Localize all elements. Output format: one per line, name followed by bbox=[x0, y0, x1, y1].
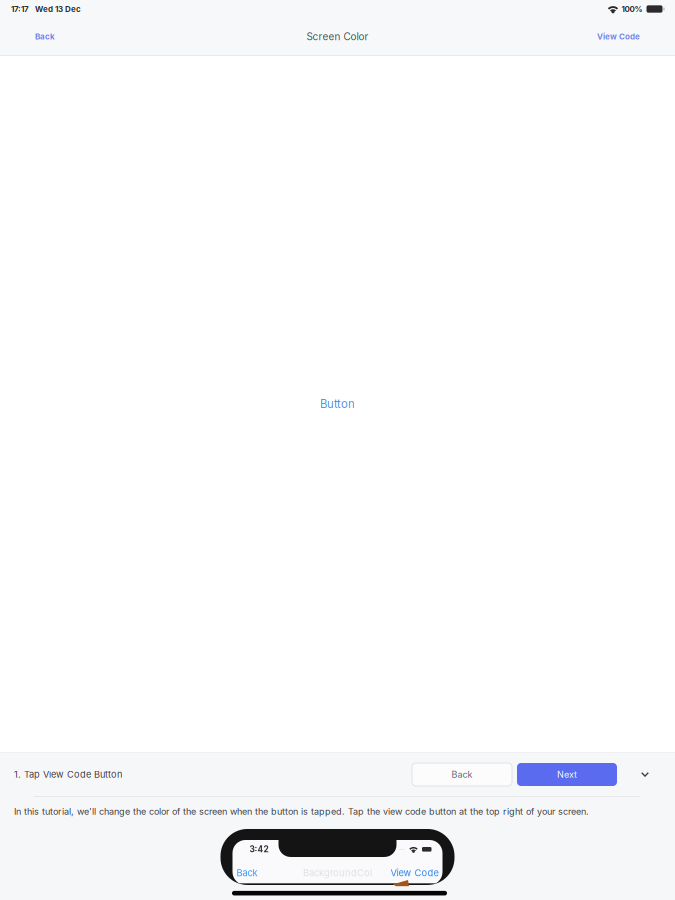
staticText: BackgroundCol bbox=[303, 867, 372, 879]
button[interactable]: View Code bbox=[589, 25, 648, 48]
staticText: In this tutorial, we'll change the color… bbox=[14, 806, 589, 817]
staticText: View Code bbox=[390, 867, 438, 879]
staticText: Back bbox=[236, 867, 257, 879]
staticText: ··· bbox=[399, 844, 405, 854]
staticText: View Code bbox=[597, 32, 640, 41]
button[interactable]: Next bbox=[517, 763, 617, 786]
button[interactable]: Collapse step bbox=[629, 763, 661, 786]
staticText: 3:42 bbox=[249, 844, 268, 854]
staticText: Button bbox=[320, 397, 355, 411]
staticText: 100% bbox=[621, 4, 642, 14]
staticText: Back bbox=[451, 769, 472, 780]
button[interactable]: Back bbox=[27, 25, 63, 48]
staticText: 1. Tap View Code Button bbox=[14, 769, 122, 780]
staticText: Next bbox=[557, 769, 577, 780]
staticText: Screen Color bbox=[306, 30, 368, 43]
staticText: Back bbox=[35, 32, 55, 41]
button[interactable]: Back bbox=[412, 763, 512, 786]
button[interactable]: Button bbox=[312, 389, 363, 419]
staticText: 17:17 Wed 13 Dec bbox=[11, 4, 81, 14]
